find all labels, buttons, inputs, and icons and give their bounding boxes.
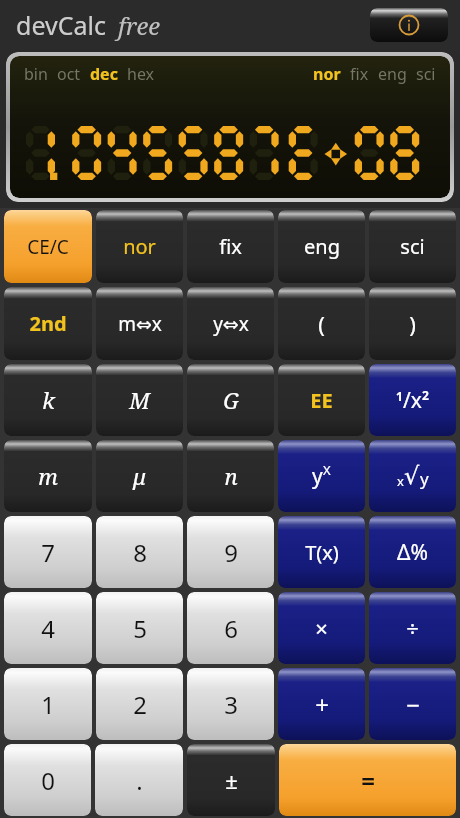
button[interactable]: m	[4, 440, 92, 512]
button[interactable]: Info	[370, 8, 448, 42]
staticText: y	[420, 467, 429, 490]
button[interactable]: 1	[4, 668, 92, 740]
staticText: 3	[224, 688, 238, 721]
button[interactable]: 6	[187, 592, 274, 664]
staticText: −	[406, 688, 420, 721]
staticText: 8	[133, 536, 147, 569]
button[interactable]: M	[96, 364, 183, 436]
button[interactable]: .	[95, 744, 183, 816]
button[interactable]: Δ%	[369, 516, 456, 588]
staticText: 9	[224, 536, 238, 569]
staticText: hex	[127, 63, 155, 85]
staticText: /x	[403, 386, 422, 415]
staticText: 1	[396, 388, 403, 404]
staticText: eng	[304, 233, 340, 260]
staticText: k	[42, 385, 55, 415]
button[interactable]: y⇔x	[187, 287, 274, 360]
button[interactable]: 3	[187, 668, 274, 740]
staticText: √	[404, 462, 420, 490]
staticText: M	[129, 385, 150, 415]
button[interactable]: x	[369, 440, 456, 512]
staticText: =	[361, 764, 375, 797]
button[interactable]: EE	[278, 364, 365, 436]
staticText: devCalc	[16, 8, 106, 42]
staticText: free	[118, 9, 161, 42]
button[interactable]: ±	[187, 744, 275, 816]
staticText: sci	[416, 63, 436, 85]
button[interactable]: ×	[278, 592, 365, 664]
staticText: Δ%	[397, 538, 428, 567]
staticText: G	[223, 385, 239, 415]
button[interactable]: −	[369, 668, 456, 740]
staticText: 6	[224, 612, 238, 645]
staticText: 2nd	[29, 310, 67, 337]
button[interactable]: (	[278, 287, 365, 360]
button[interactable]: 4	[4, 592, 92, 664]
staticText: y	[312, 462, 323, 491]
staticText: +	[315, 688, 329, 721]
button[interactable]: y	[278, 440, 365, 512]
button[interactable]: 2	[96, 668, 183, 740]
staticText: fix	[219, 233, 242, 260]
button[interactable]: ÷	[369, 592, 456, 664]
staticText: nor	[123, 233, 156, 260]
staticText: ÷	[406, 613, 419, 643]
button[interactable]: m⇔x	[96, 287, 183, 360]
staticText: (	[318, 309, 325, 339]
button[interactable]: 5	[96, 592, 183, 664]
button[interactable]: 8	[96, 516, 183, 588]
button[interactable]: μ	[96, 440, 183, 512]
button[interactable]: k	[4, 364, 92, 436]
staticText: m⇔x	[118, 311, 162, 337]
button[interactable]: +	[278, 668, 365, 740]
staticText: 7	[41, 536, 55, 569]
staticText: bin	[24, 63, 48, 85]
button[interactable]: T(x)	[278, 516, 365, 588]
staticText: ±	[225, 765, 238, 795]
staticText: ×	[315, 613, 328, 643]
staticText: eng	[378, 63, 407, 85]
button[interactable]: n	[187, 440, 274, 512]
button[interactable]: 1	[369, 364, 456, 436]
staticText: 0	[41, 764, 55, 797]
button[interactable]: nor	[96, 210, 183, 283]
button[interactable]: 0	[4, 744, 91, 816]
staticText: y⇔x	[213, 311, 249, 337]
button[interactable]: G	[187, 364, 274, 436]
button[interactable]: 7	[4, 516, 92, 588]
staticText: μ	[133, 461, 146, 491]
staticText: 2	[133, 688, 147, 721]
button[interactable]: eng	[278, 210, 365, 283]
staticText: X	[323, 461, 331, 479]
staticText: fix	[350, 63, 369, 85]
staticText: 5	[133, 612, 147, 645]
staticText: 2	[422, 387, 429, 403]
staticText: )	[409, 309, 416, 339]
staticText: T(x)	[305, 539, 339, 566]
button[interactable]: sci	[369, 210, 456, 283]
button[interactable]: =	[279, 744, 456, 816]
staticText: x	[397, 472, 404, 490]
staticText: n	[224, 461, 238, 491]
staticText: .	[136, 764, 143, 797]
staticText: m	[38, 461, 58, 491]
staticText: nor	[313, 63, 341, 85]
staticText: EE	[310, 387, 333, 414]
staticText: 1	[41, 688, 55, 721]
button[interactable]: 9	[187, 516, 274, 588]
staticText: 4	[41, 612, 55, 645]
button[interactable]: 2nd	[4, 287, 92, 360]
staticText: CE/C	[27, 234, 69, 260]
staticText: oct	[57, 63, 81, 85]
button[interactable]: )	[369, 287, 456, 360]
staticText: sci	[400, 233, 425, 260]
staticText: dec	[90, 63, 118, 85]
button[interactable]: CE/C	[4, 210, 92, 283]
button[interactable]: fix	[187, 210, 274, 283]
